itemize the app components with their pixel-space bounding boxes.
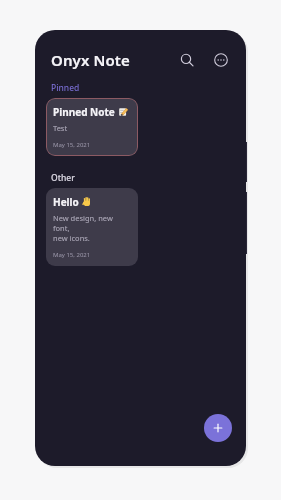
button[interactable]: Pinned Note [46, 98, 138, 156]
staticText: Pinned Note [53, 105, 115, 119]
staticText: new icons. [53, 233, 90, 243]
button[interactable]: Hello [46, 188, 138, 266]
button[interactable]: More options [208, 47, 234, 73]
staticText: Test [53, 123, 68, 133]
staticText: May 15, 2021 [53, 251, 91, 259]
staticText: Other [51, 172, 75, 184]
staticText: New design, new font, [53, 213, 131, 233]
button[interactable]: Add note [204, 414, 232, 442]
staticText: Hello [53, 195, 79, 209]
button[interactable]: Search [174, 47, 200, 73]
staticText: Onyx Note [51, 50, 130, 70]
staticText: May 15, 2021 [53, 141, 91, 149]
staticText: Pinned [51, 82, 80, 94]
